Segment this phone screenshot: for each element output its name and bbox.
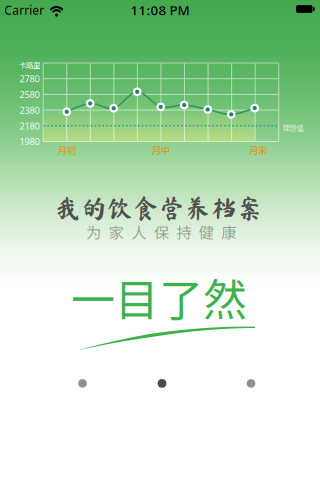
staticText: 11:08 PM [130,1,189,19]
staticText: 为家人保持健康 [86,221,236,243]
staticText: 2780 [19,72,39,85]
staticText: 1980 [19,135,39,148]
button[interactable]: Page 1 [78,379,87,388]
staticText: 一目了然 [71,265,247,329]
staticText: 月初 [58,143,76,157]
button[interactable]: Page 2 [158,379,166,388]
staticText: 2580 [19,88,39,101]
staticText: Carrier [4,2,44,18]
staticText: 2180 [19,120,39,132]
staticText: 月末 [249,143,267,157]
staticText: 理想值 [282,122,303,133]
staticText: 月中 [152,143,170,157]
staticText: 卡路里 [19,59,40,70]
button[interactable]: Page 3 [247,379,255,388]
staticText: 2380 [19,104,39,116]
staticText: 我的饮食营养档案 [55,195,263,221]
staticText: 我的饮食营养档案 [55,195,263,221]
